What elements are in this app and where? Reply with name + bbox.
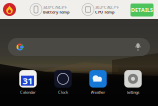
button[interactable]: DETAILS — [130, 3, 153, 16]
staticText: Calendar — [20, 90, 36, 95]
staticText: Weather — [90, 90, 105, 95]
button[interactable]: Weather — [81, 70, 115, 94]
staticText: DETAILS — [131, 6, 153, 14]
staticText: 34.0°C/94.3°F — [43, 4, 67, 10]
button[interactable]: Settings — [116, 70, 150, 94]
staticText: 31 — [22, 74, 32, 87]
staticText: Clock — [58, 90, 68, 95]
button[interactable]: Google Search — [8, 38, 150, 56]
staticText: Battery Temp — [43, 9, 70, 15]
staticText: CPU Temp — [95, 9, 115, 15]
staticText: Settings — [126, 90, 139, 95]
button[interactable]: Clock — [46, 70, 80, 94]
button[interactable]: 31 — [11, 70, 45, 94]
staticText: 30.2°C/82.7°F — [95, 4, 119, 10]
